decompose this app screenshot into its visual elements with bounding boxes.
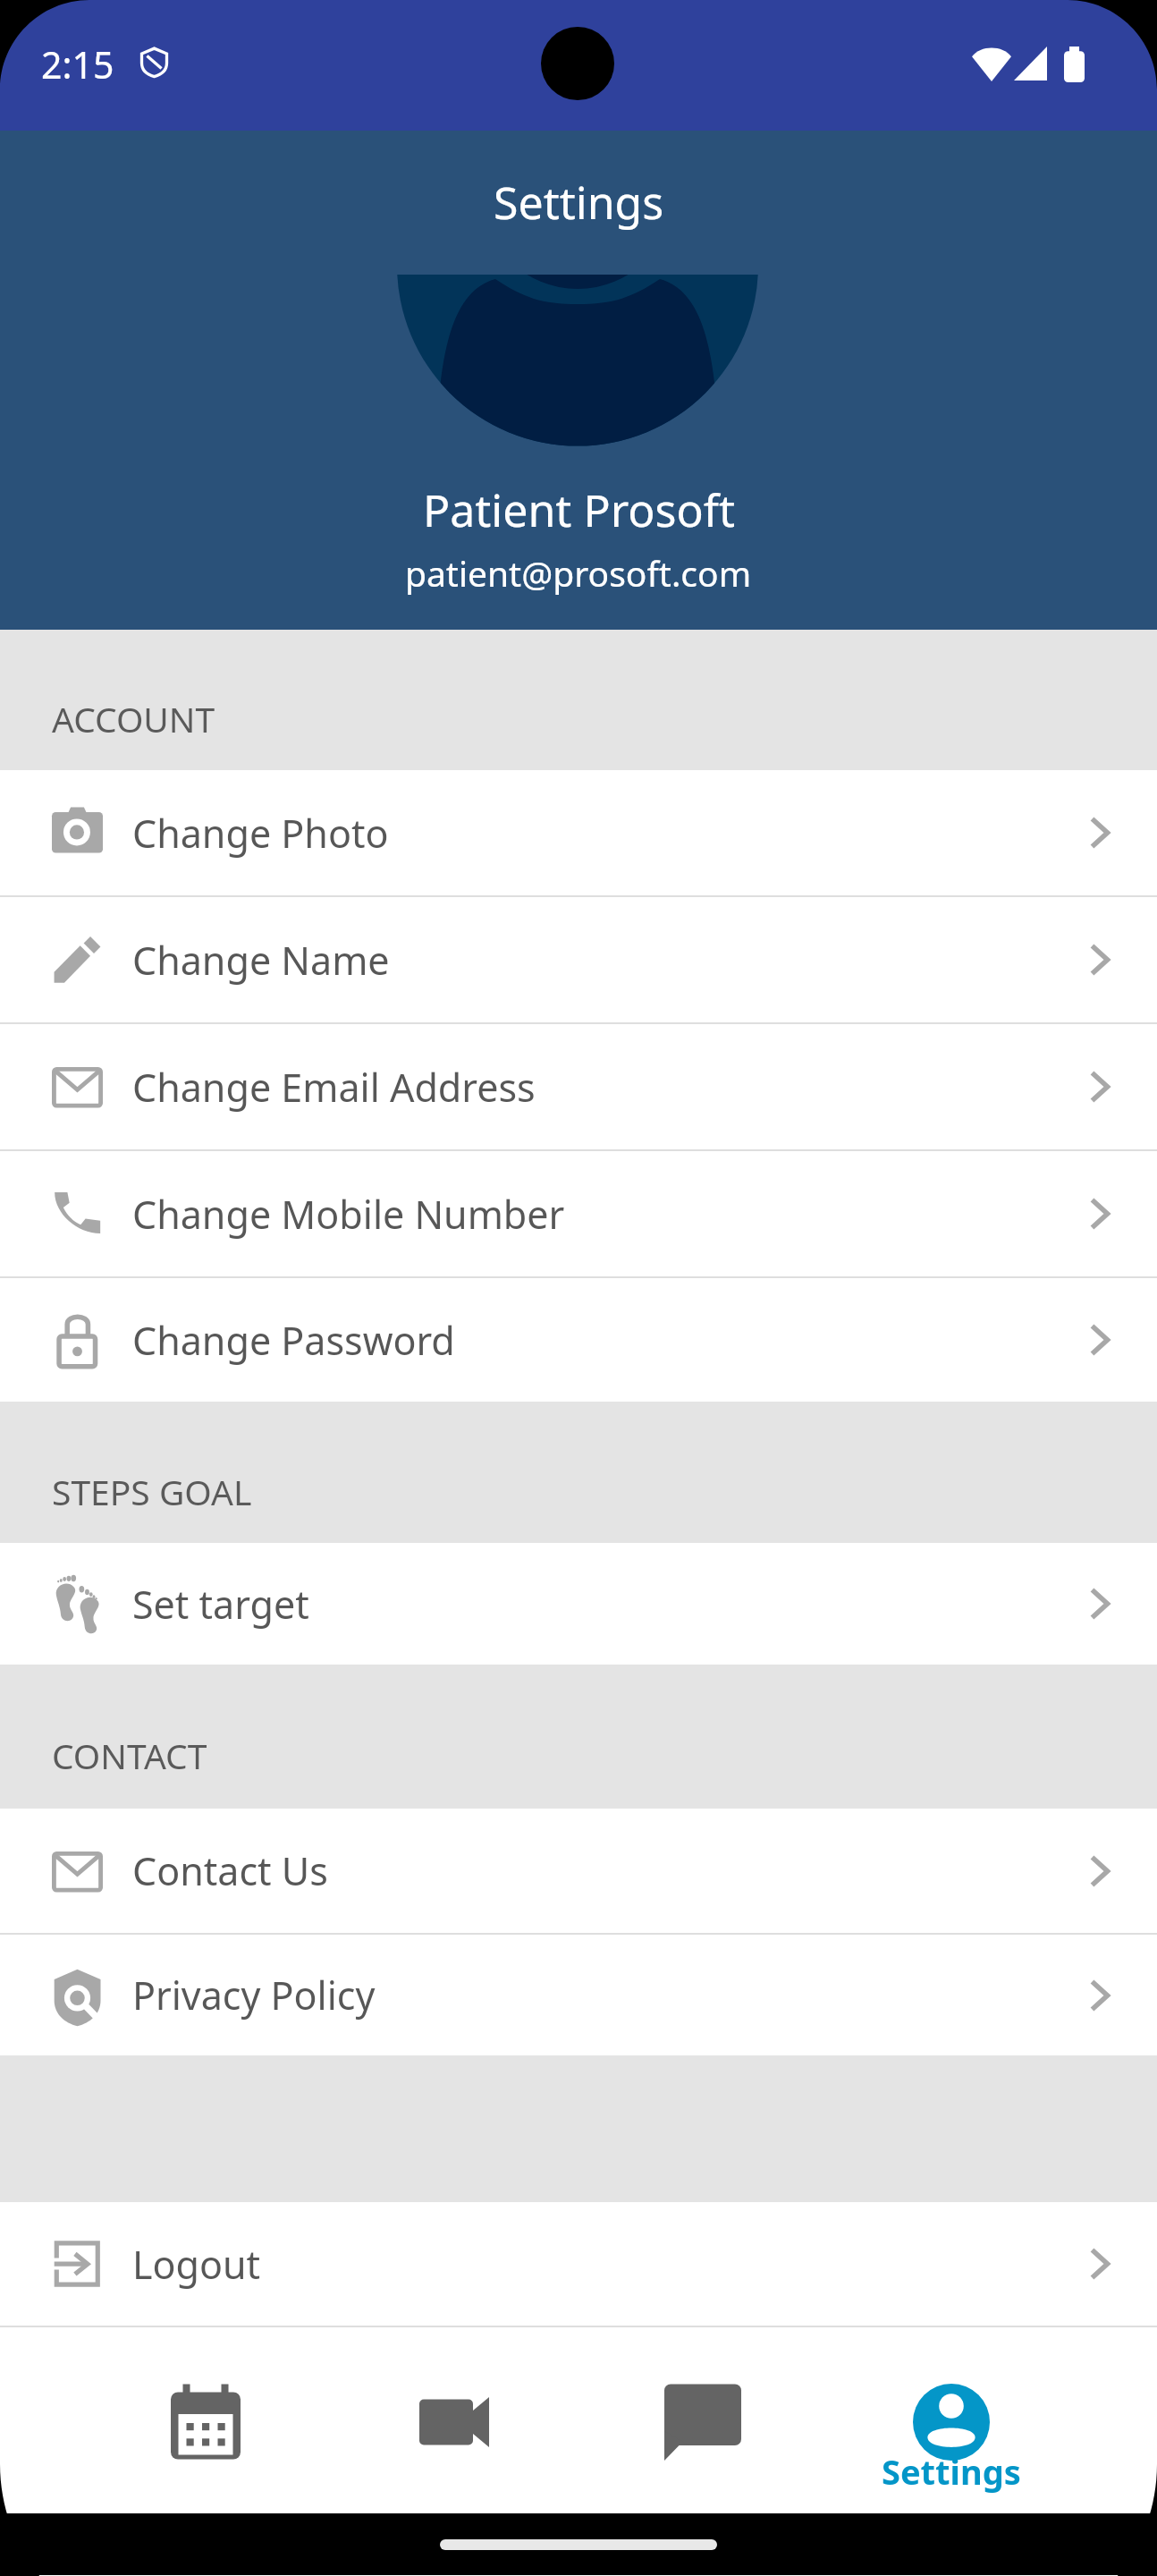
button[interactable]: Settings bbox=[827, 2327, 1076, 2506]
staticText: STEPS GOAL bbox=[52, 1468, 252, 1515]
staticText: patient@prosoft.com bbox=[405, 549, 752, 597]
button[interactable]: Privacy Policy bbox=[0, 1935, 1157, 2055]
button[interactable]: Change Photo bbox=[0, 770, 1157, 895]
button[interactable]: Logout bbox=[0, 2202, 1157, 2326]
staticText: Change Photo bbox=[132, 807, 389, 860]
staticText: CONTACT bbox=[52, 1732, 207, 1779]
button[interactable]: Change Mobile Number bbox=[0, 1151, 1157, 1276]
staticText: Change Password bbox=[132, 1314, 455, 1367]
button[interactable]: Change Password bbox=[0, 1278, 1157, 1402]
button[interactable]: Video call bbox=[330, 2327, 578, 2506]
staticText: Patient Prosoft bbox=[423, 479, 735, 540]
staticText: Logout bbox=[132, 2238, 261, 2291]
staticText: Change Name bbox=[132, 934, 390, 987]
staticText: Settings bbox=[882, 2448, 1021, 2495]
button[interactable]: Set target bbox=[0, 1543, 1157, 1665]
button[interactable]: Chat bbox=[578, 2327, 827, 2506]
button[interactable]: Appointments bbox=[81, 2327, 330, 2506]
staticText: Privacy Policy bbox=[132, 1969, 376, 2021]
staticText: Settings bbox=[494, 172, 664, 233]
staticText: ACCOUNT bbox=[52, 695, 215, 742]
button[interactable]: Contact Us bbox=[0, 1809, 1157, 1933]
staticText: 2:15 bbox=[41, 39, 114, 89]
staticText: Set target bbox=[132, 1578, 309, 1631]
staticText: Contact Us bbox=[132, 1844, 328, 1897]
button[interactable]: Change Email Address bbox=[0, 1024, 1157, 1149]
staticText: Change Email Address bbox=[132, 1061, 536, 1114]
button[interactable]: Change Name bbox=[0, 897, 1157, 1022]
staticText: Change Mobile Number bbox=[132, 1188, 565, 1241]
